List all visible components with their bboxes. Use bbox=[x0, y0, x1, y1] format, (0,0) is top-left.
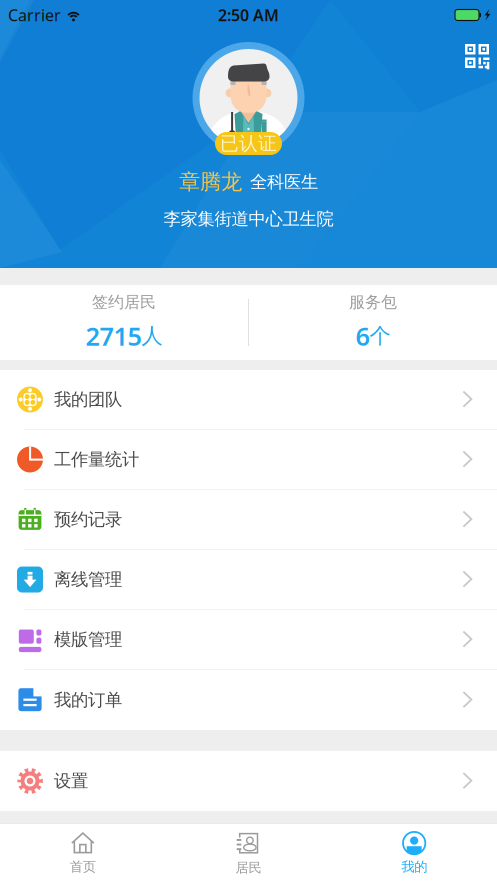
staticText: 我的团队 bbox=[54, 389, 122, 410]
staticText: 服务包 bbox=[349, 292, 397, 312]
staticText: 全科医生 bbox=[250, 171, 318, 193]
staticText: 已认证 bbox=[220, 132, 277, 155]
staticText: 离线管理 bbox=[54, 569, 122, 590]
staticText: 居民 bbox=[235, 860, 261, 876]
button[interactable]: 设置 bbox=[0, 751, 497, 811]
staticText: 首页 bbox=[70, 859, 96, 875]
button[interactable]: Scan QR code bbox=[454, 33, 497, 79]
staticText: 章腾龙 bbox=[179, 169, 242, 195]
staticText: 2:50 AM bbox=[218, 4, 279, 26]
staticText: 设置 bbox=[54, 770, 88, 792]
staticText: 个 bbox=[369, 323, 390, 349]
button[interactable]: 签约居民 bbox=[0, 292, 248, 353]
button[interactable]: 我的订单 bbox=[0, 670, 497, 730]
staticText: 人 bbox=[141, 323, 162, 349]
button[interactable]: 首页 bbox=[0, 832, 166, 875]
staticText: 我的 bbox=[401, 859, 427, 875]
staticText: 我的订单 bbox=[54, 689, 122, 711]
button[interactable]: 我的团队 bbox=[0, 370, 497, 430]
button[interactable]: 服务包 bbox=[249, 292, 497, 353]
staticText: 工作量统计 bbox=[54, 449, 139, 470]
staticText: 6 bbox=[355, 319, 369, 353]
staticText: 签约居民 bbox=[92, 292, 156, 312]
staticText: Carrier bbox=[8, 4, 61, 26]
button[interactable]: 居民 bbox=[166, 831, 331, 876]
staticText: 2715 bbox=[85, 319, 141, 353]
button[interactable]: 预约记录 bbox=[0, 490, 497, 550]
button[interactable]: 我的 bbox=[331, 832, 497, 875]
staticText: 李家集街道中心卫生院 bbox=[163, 208, 333, 230]
staticText: 模版管理 bbox=[54, 629, 122, 650]
button[interactable]: 模版管理 bbox=[0, 610, 497, 670]
button[interactable]: 离线管理 bbox=[0, 550, 497, 610]
button[interactable]: 工作量统计 bbox=[0, 430, 497, 490]
staticText: 预约记录 bbox=[54, 509, 122, 530]
